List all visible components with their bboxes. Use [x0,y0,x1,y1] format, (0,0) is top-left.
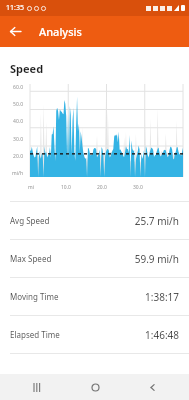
staticText: 25.7 mi/h [134,214,179,228]
button[interactable]: Recent apps [17,374,57,400]
staticText: 10.0 [61,184,71,191]
staticText: 59.9 mi/h [134,252,179,266]
staticText: Avg Speed [10,215,50,226]
staticText: 30.0 [0,136,23,143]
staticText: Speed [10,61,44,76]
button[interactable]: Moving Time [0,278,189,316]
staticText: 20.0 [0,153,23,160]
staticText: 50.0 [0,101,23,108]
staticText: 40.0 [0,118,23,125]
staticText: 30.0 [133,184,143,191]
staticText: mi [28,184,34,191]
staticText: Moving Time [10,291,59,302]
button[interactable]: Back [132,374,172,400]
staticText: Max Speed [10,253,52,264]
staticText: mi/h [0,170,23,177]
staticText: Elapsed Time [10,329,60,340]
button[interactable]: Elapsed Time [0,316,189,354]
button[interactable]: Home [75,374,115,400]
button[interactable]: Avg Speed [0,202,189,240]
staticText: 20.0 [97,184,107,191]
staticText: 1:46:48 [145,328,179,342]
staticText: 60.0 [0,84,23,91]
staticText: 11:35 [6,3,24,13]
button[interactable]: Max Speed [0,240,189,278]
button[interactable]: Back [0,16,31,47]
staticText: Analysis [39,24,82,39]
staticText: 1:38:17 [145,290,179,304]
